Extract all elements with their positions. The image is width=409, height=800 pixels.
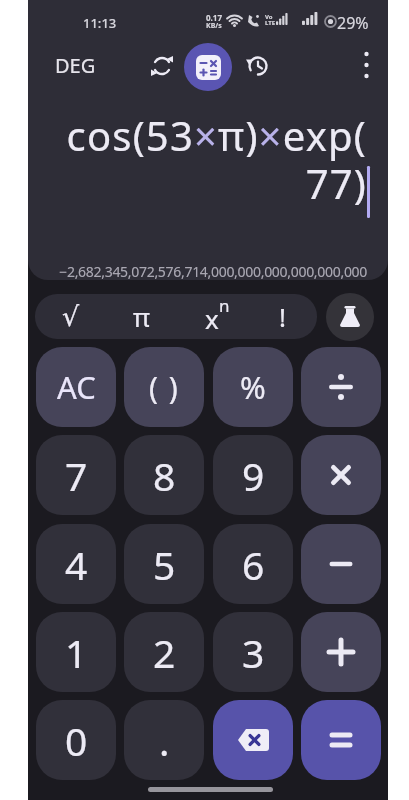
staticText: π (133, 299, 150, 334)
button[interactable]: 9 (213, 435, 293, 515)
staticText: LTE (265, 19, 276, 27)
staticText: ( ) (149, 367, 180, 408)
button[interactable]: 5 (124, 524, 204, 604)
button[interactable]: DEG (55, 52, 96, 79)
button[interactable]: % (213, 347, 293, 427)
staticText: cos(53×π)×exp( 77) (28, 108, 367, 211)
staticText: 3 (242, 626, 265, 679)
staticText: 1 (65, 626, 88, 679)
staticText: . (159, 714, 170, 767)
button[interactable] (301, 700, 381, 780)
button[interactable]: x (176, 294, 247, 339)
button[interactable]: 7 (36, 435, 116, 515)
staticText: 0.17 (206, 12, 222, 23)
button[interactable]: 0 (36, 700, 116, 780)
button[interactable]: 8 (124, 435, 204, 515)
staticText: 9 (242, 449, 265, 502)
staticText: −2,682,345,072,576,714,000,000,000,000,0… (28, 262, 367, 280)
staticText: KB/s (206, 21, 222, 31)
button[interactable]: AC (36, 347, 116, 427)
button[interactable] (301, 612, 381, 692)
button[interactable]: 4 (36, 524, 116, 604)
staticText: n (219, 294, 230, 317)
staticText: % (240, 366, 266, 408)
button[interactable]: 3 (213, 612, 293, 692)
staticText: 29% (337, 12, 369, 34)
button[interactable] (326, 293, 374, 341)
staticText: 8 (153, 449, 176, 502)
staticText: AC (57, 366, 96, 408)
button[interactable]: 1 (36, 612, 116, 692)
button[interactable]: √ (35, 294, 106, 339)
staticText: 0 (65, 714, 88, 767)
staticText: Vo (265, 13, 273, 21)
button[interactable] (240, 49, 273, 82)
button[interactable]: 6 (213, 524, 293, 604)
staticText: 2 (153, 626, 176, 679)
button[interactable]: ! (247, 294, 317, 339)
button[interactable]: 2 (124, 612, 204, 692)
staticText: 7 (65, 449, 88, 502)
button[interactable] (301, 524, 381, 604)
button[interactable] (184, 43, 232, 91)
staticText: 6 (242, 538, 265, 591)
button[interactable] (145, 49, 178, 82)
button[interactable] (354, 45, 378, 85)
button[interactable]: . (124, 700, 204, 780)
button[interactable] (301, 435, 381, 515)
button[interactable] (213, 700, 293, 780)
staticText: 5 (153, 538, 176, 591)
staticText: ! (279, 299, 286, 334)
button[interactable] (301, 347, 381, 427)
staticText: 11:13 (83, 14, 117, 32)
staticText: x (205, 301, 219, 336)
button[interactable]: ( ) (124, 347, 204, 427)
button[interactable]: π (106, 294, 177, 339)
staticText: 4 (65, 538, 88, 591)
staticText: √ (62, 301, 80, 332)
